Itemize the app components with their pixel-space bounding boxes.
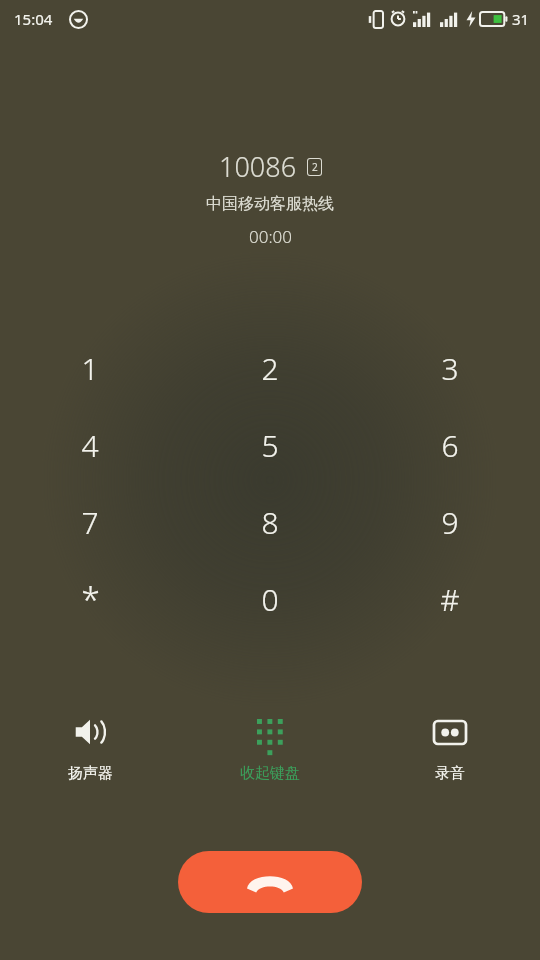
staticText: 3 <box>441 348 459 389</box>
staticText: * <box>81 577 100 623</box>
staticText: 2 <box>261 348 279 389</box>
button[interactable]: 4 <box>0 407 180 484</box>
staticText: 1 <box>81 348 99 389</box>
button[interactable]: 2 <box>180 330 360 407</box>
staticText: 2 <box>312 160 318 174</box>
staticText: 4 <box>81 425 99 466</box>
staticText: 8 <box>261 502 279 543</box>
button[interactable]: * <box>0 561 180 638</box>
button[interactable]: 收起键盘 <box>180 700 360 800</box>
button[interactable]: 6 <box>360 407 540 484</box>
staticText: 7 <box>81 502 99 543</box>
staticText: 9 <box>441 502 459 543</box>
staticText: 录音 <box>435 764 465 783</box>
button[interactable]: 录音 <box>360 700 540 800</box>
staticText: 15:04 <box>14 9 53 29</box>
staticText: 31 <box>512 9 530 29</box>
button[interactable]: 扬声器 <box>0 700 180 800</box>
staticText: 扬声器 <box>68 764 113 783</box>
button[interactable]: 1 <box>0 330 180 407</box>
button[interactable]: 0 <box>180 561 360 638</box>
staticText: # <box>440 579 460 620</box>
staticText: 0 <box>261 579 279 620</box>
staticText: 收起键盘 <box>240 764 300 783</box>
staticText: 00:00 <box>249 225 292 248</box>
staticText: 10086 <box>219 148 297 185</box>
staticText: 中国移动客服热线 <box>206 194 334 214</box>
staticText: 5 <box>261 425 279 466</box>
staticText: 6 <box>441 425 459 466</box>
button[interactable]: # <box>360 561 540 638</box>
button[interactable]: 9 <box>360 484 540 561</box>
button[interactable]: End call <box>178 851 362 913</box>
button[interactable]: 5 <box>180 407 360 484</box>
button[interactable]: 7 <box>0 484 180 561</box>
button[interactable]: 8 <box>180 484 360 561</box>
button[interactable]: 3 <box>360 330 540 407</box>
